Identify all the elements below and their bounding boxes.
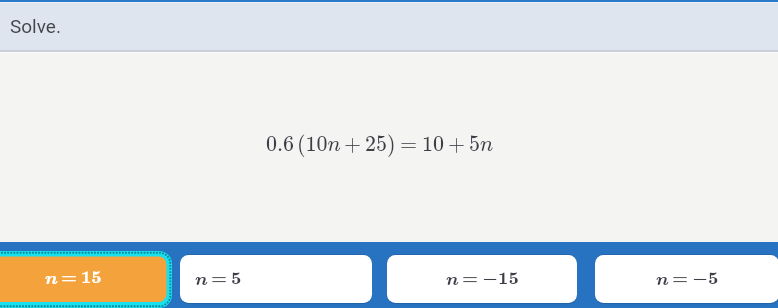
staticText: n <box>446 272 459 289</box>
staticText: + <box>344 131 362 157</box>
staticText: = <box>462 267 479 289</box>
staticText: = <box>61 266 78 288</box>
staticText: 0.6 <box>266 131 295 157</box>
staticText: + <box>448 131 466 157</box>
staticText: = <box>672 267 689 289</box>
button[interactable]: n <box>180 253 372 305</box>
staticText: Solve. <box>10 15 61 37</box>
button[interactable]: n <box>595 253 778 305</box>
button[interactable]: n <box>387 253 577 305</box>
staticText: 5n <box>469 131 494 157</box>
staticText: 15 <box>81 266 102 288</box>
staticText: (10n <box>297 131 341 157</box>
staticText: 5 <box>231 267 242 289</box>
button[interactable]: n <box>0 251 172 308</box>
staticText: −15 <box>482 267 519 289</box>
staticText: 10 <box>422 131 445 157</box>
staticText: n <box>45 271 58 288</box>
staticText: = <box>400 131 418 157</box>
staticText: = <box>211 267 228 289</box>
staticText: n <box>195 272 208 289</box>
staticText: −5 <box>692 267 719 289</box>
staticText: 25) <box>365 131 396 157</box>
staticText: n <box>656 272 669 289</box>
